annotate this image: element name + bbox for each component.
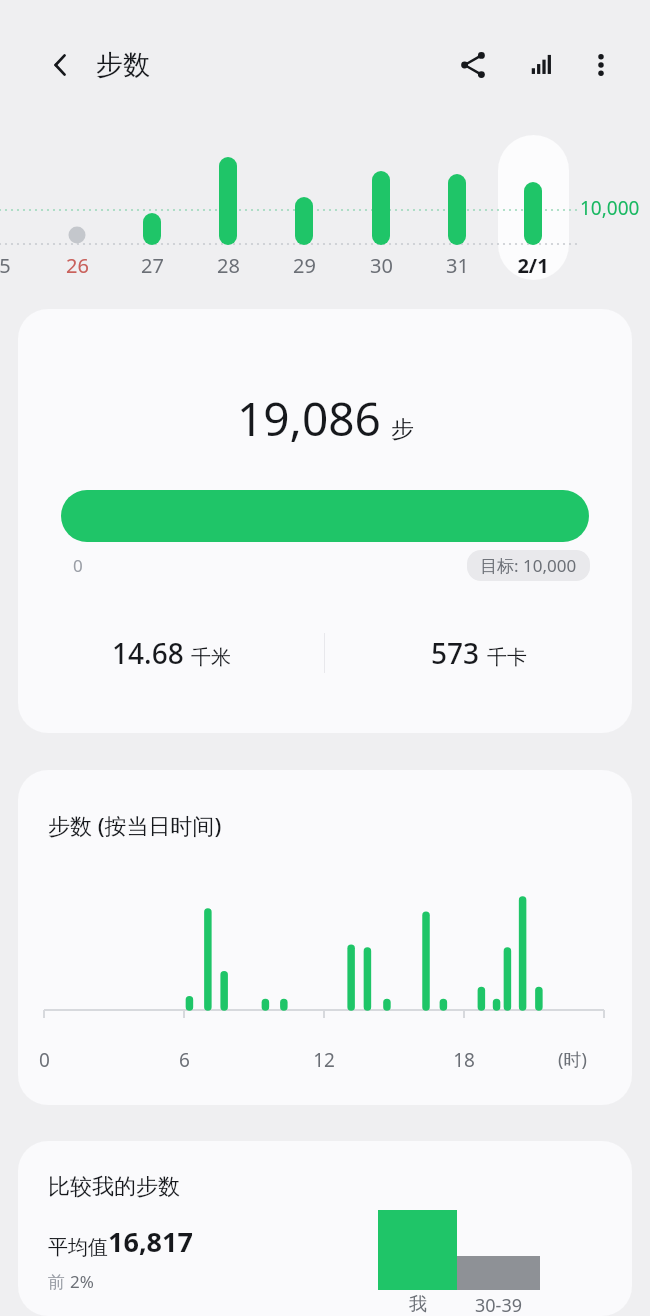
button[interactable]: 比较我的步数	[18, 1141, 632, 1316]
staticText: 27	[141, 252, 164, 279]
staticText: 18	[453, 1047, 475, 1073]
staticText: 步	[391, 415, 414, 444]
button[interactable]: More options	[578, 42, 624, 88]
staticText: 步数 (按当日时间)	[48, 810, 222, 840]
staticText: 0	[73, 554, 83, 577]
staticText: 19,086	[237, 387, 381, 450]
staticText: 0	[39, 1047, 50, 1073]
button[interactable]: 30	[351, 252, 411, 279]
staticText: 30	[370, 252, 393, 279]
button[interactable]: 5	[0, 252, 35, 279]
staticText: 6	[179, 1047, 190, 1073]
staticText: 5	[0, 252, 11, 279]
staticText: 16,817	[108, 1223, 193, 1260]
staticText: 比较我的步数	[48, 1173, 180, 1201]
button[interactable]: Back	[40, 44, 82, 86]
staticText: 步数	[96, 48, 150, 82]
staticText: 2%	[70, 1270, 94, 1293]
staticText: 14.68	[112, 634, 184, 672]
staticText: 我	[409, 1293, 427, 1316]
staticText: (时)	[558, 1047, 587, 1072]
button[interactable]	[498, 135, 569, 280]
button[interactable]: 2/1	[503, 252, 563, 279]
button[interactable]: 29	[274, 252, 334, 279]
staticText: 30-39	[475, 1293, 522, 1316]
staticText: 10,000	[580, 195, 640, 221]
staticText: 31	[446, 252, 469, 279]
staticText: 12	[313, 1047, 335, 1073]
button[interactable]: 28	[198, 252, 258, 279]
button[interactable]: 26	[47, 252, 107, 279]
button[interactable]: Share	[448, 40, 498, 90]
staticText: 前	[48, 1270, 70, 1293]
staticText: 573	[431, 634, 480, 672]
staticText: 千米	[191, 645, 231, 670]
staticText: 平均值	[48, 1235, 108, 1260]
button[interactable]: 19,086	[18, 309, 632, 733]
staticText: 千卡	[487, 645, 527, 670]
staticText: 26	[66, 252, 89, 279]
button[interactable]: Trends	[516, 40, 566, 90]
staticText: 目标: 10,000	[480, 554, 577, 577]
button[interactable]: 步数 (按当日时间)	[18, 770, 632, 1105]
button[interactable]: 27	[122, 252, 182, 279]
staticText: 29	[293, 252, 316, 279]
staticText: 2/1	[517, 252, 549, 279]
button[interactable]: 31	[427, 252, 487, 279]
staticText: 28	[217, 252, 240, 279]
